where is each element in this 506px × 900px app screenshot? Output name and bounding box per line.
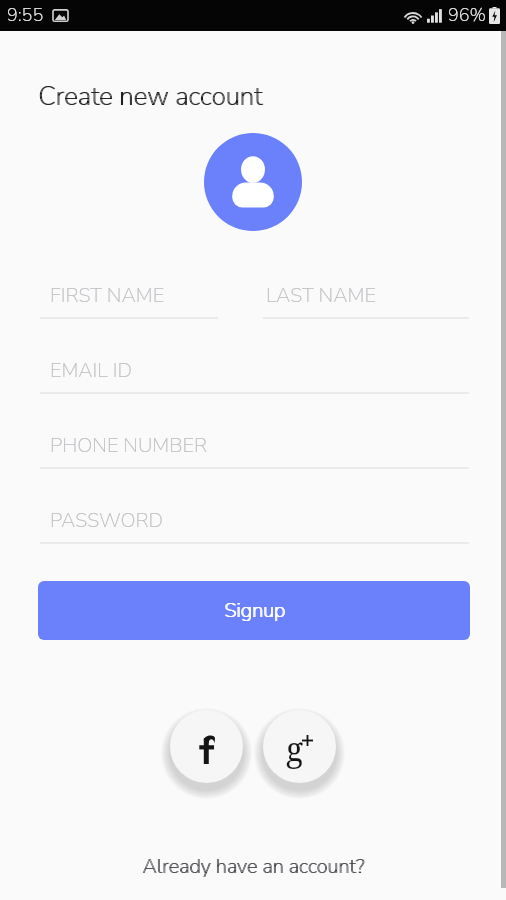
button[interactable]: FIRST NAME bbox=[40, 261, 218, 319]
staticText: Create new account bbox=[39, 79, 264, 114]
button[interactable]: Already have an account? bbox=[136, 847, 370, 886]
staticText: LAST NAME bbox=[266, 282, 376, 309]
staticText: EMAIL ID bbox=[50, 357, 132, 384]
staticText: g bbox=[286, 727, 304, 769]
staticText: 96% bbox=[448, 3, 487, 28]
staticText: PASSWORD bbox=[50, 507, 164, 534]
button[interactable]: LAST NAME bbox=[263, 261, 469, 319]
staticText: FIRST NAME bbox=[50, 282, 165, 309]
button[interactable]: PHONE NUMBER bbox=[40, 411, 469, 469]
staticText: Create new account bbox=[38, 79, 263, 114]
staticText: Signup bbox=[224, 597, 285, 624]
staticText: Signup bbox=[225, 597, 286, 624]
staticText: Already have an account? bbox=[143, 853, 365, 880]
button[interactable]: Add profile photo bbox=[204, 133, 302, 231]
staticText: Already have an account? bbox=[142, 853, 364, 880]
button[interactable]: EMAIL ID bbox=[40, 336, 469, 394]
button[interactable]: Sign up with Facebook bbox=[170, 710, 243, 783]
button[interactable]: Signup bbox=[38, 581, 470, 640]
staticText: 9:55 bbox=[7, 3, 44, 28]
button[interactable]: Sign up with Google Plus bbox=[263, 710, 336, 783]
button[interactable]: PASSWORD bbox=[40, 486, 469, 544]
staticText: PHONE NUMBER bbox=[50, 432, 208, 459]
